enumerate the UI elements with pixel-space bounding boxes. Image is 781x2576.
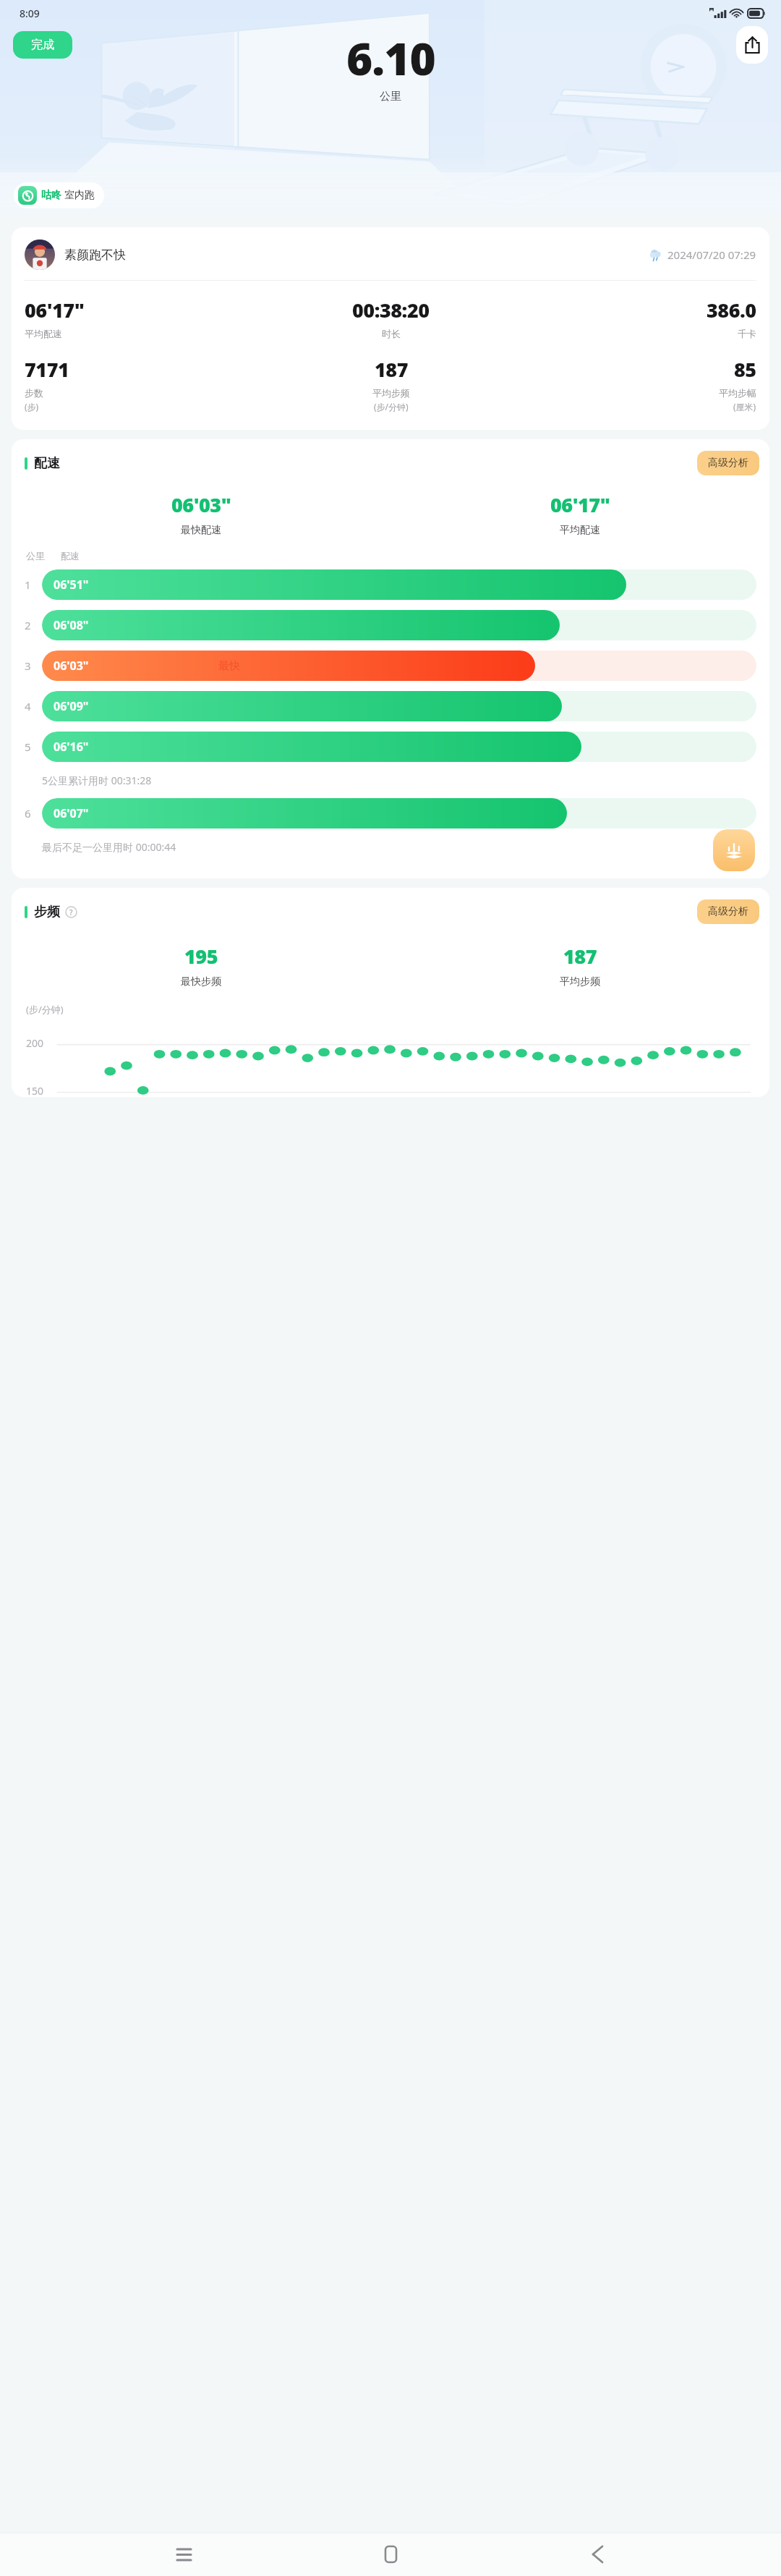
button[interactable]: Back	[574, 2533, 620, 2576]
staticText: 1	[25, 577, 31, 592]
staticText: 素颜跑不快	[64, 247, 126, 263]
staticText: 06'16"	[54, 739, 89, 755]
staticText: 步频	[34, 904, 60, 920]
staticText: 00:38:20	[352, 297, 430, 323]
staticText: 06'08"	[54, 617, 89, 633]
staticText: 配速	[61, 550, 80, 562]
staticText: 室内跑	[64, 189, 95, 202]
staticText: 最快配速	[181, 524, 221, 537]
staticText: 完成	[31, 38, 54, 52]
button[interactable]: 2	[25, 610, 756, 640]
staticText: 06'51"	[54, 577, 89, 593]
staticText: 平均步频	[372, 387, 410, 399]
staticText: 7171	[25, 356, 69, 383]
staticText: (步)	[25, 401, 39, 412]
staticText: 千卡	[738, 328, 756, 339]
staticText: 187	[563, 943, 597, 970]
staticText: 386.0	[707, 297, 756, 323]
staticText: (步/分钟)	[26, 1003, 64, 1016]
staticText: 6	[25, 806, 31, 821]
staticText: 06'09"	[54, 698, 89, 714]
button[interactable]: 完成	[13, 31, 72, 59]
staticText: 5	[25, 740, 31, 754]
button[interactable]: 6	[25, 798, 756, 829]
staticText: 06'17"	[550, 491, 610, 518]
button[interactable]: Recents	[161, 2533, 207, 2576]
staticText: 195	[184, 943, 218, 970]
staticText: 高级分析	[708, 905, 748, 918]
staticText: 85	[734, 356, 756, 383]
staticText: 步数	[25, 387, 43, 399]
staticText: 平均配速	[25, 328, 62, 339]
staticText: 06'03"	[171, 491, 231, 518]
button[interactable]: 高级分析	[697, 451, 759, 475]
staticText: 平均步幅	[719, 387, 756, 399]
staticText: 咕咚	[41, 189, 61, 202]
staticText: 06'03"	[54, 658, 89, 674]
staticText: 5公里累计用时 00:31:28	[42, 774, 152, 787]
button[interactable]: 1	[25, 569, 756, 600]
staticText: 最快	[218, 659, 240, 673]
staticText: 150	[26, 1084, 44, 1097]
button[interactable]: Analysis	[713, 829, 755, 871]
button[interactable]: 5	[25, 732, 756, 762]
staticText: 200	[26, 1036, 44, 1050]
staticText: 平均步频	[560, 975, 600, 988]
staticText: 平均配速	[560, 524, 600, 537]
staticText: 高级分析	[708, 457, 748, 470]
staticText: 时长	[382, 328, 401, 339]
staticText: 6.10	[346, 27, 435, 88]
staticText: 公里	[380, 90, 401, 103]
button[interactable]: 4	[25, 691, 756, 721]
staticText: 最快步频	[181, 975, 221, 988]
staticText: ?	[69, 907, 73, 918]
button[interactable]: Home	[367, 2533, 414, 2576]
staticText: (步/分钟)	[374, 401, 409, 412]
staticText: 配速	[34, 455, 60, 472]
staticText: 3	[25, 658, 31, 673]
staticText: 2024/07/20 07:29	[667, 247, 756, 262]
staticText: 06'07"	[54, 805, 89, 821]
button[interactable]: 3	[25, 651, 756, 681]
staticText: 4	[25, 699, 31, 713]
staticText: 187	[375, 356, 408, 383]
staticText: 公里	[26, 550, 45, 562]
button[interactable]: Help	[65, 906, 77, 918]
staticText: 8:09	[20, 7, 40, 20]
button[interactable]: 高级分析	[697, 899, 759, 924]
staticText: 最后不足一公里用时 00:00:44	[42, 840, 176, 854]
button[interactable]: Share	[736, 26, 768, 64]
staticText: (厘米)	[733, 401, 756, 412]
staticText: 2	[25, 618, 31, 632]
button[interactable]: 咕咚	[14, 182, 104, 208]
staticText: 06'17"	[25, 297, 85, 323]
